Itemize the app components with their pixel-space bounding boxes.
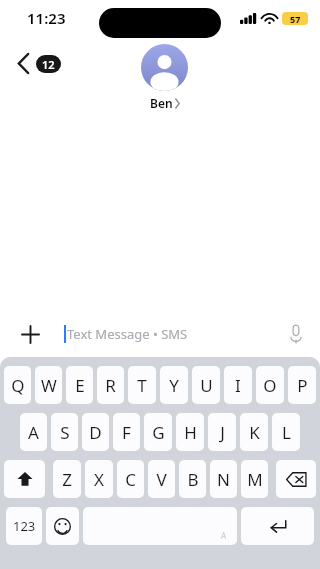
button[interactable]: Text Message • SMS — [53, 318, 280, 350]
button[interactable]: L — [272, 413, 300, 451]
staticText: A — [28, 421, 39, 444]
button[interactable]: O — [256, 366, 284, 404]
button[interactable]: I — [224, 366, 252, 404]
staticText: S — [60, 421, 70, 444]
staticText: U — [200, 374, 213, 397]
staticText: N — [217, 468, 230, 491]
button[interactable]: E — [66, 366, 93, 404]
staticText: X — [94, 468, 104, 491]
button[interactable]: U — [192, 366, 220, 404]
button[interactable]: A — [20, 413, 47, 451]
button[interactable]: Space — [83, 507, 237, 545]
staticText: Ben — [150, 95, 173, 111]
staticText: K — [249, 421, 260, 444]
button[interactable]: R — [97, 366, 124, 404]
button[interactable]: D — [82, 413, 109, 451]
button[interactable]: N — [210, 460, 237, 498]
staticText: E — [75, 374, 85, 397]
button[interactable]: Record audio message — [280, 318, 312, 350]
staticText: 11:23 — [27, 8, 66, 28]
staticText: B — [187, 468, 199, 491]
button[interactable]: M — [241, 460, 268, 498]
staticText: W — [41, 374, 57, 397]
button[interactable]: F — [113, 413, 140, 451]
button[interactable]: Q — [4, 366, 31, 404]
staticText: 123 — [13, 517, 36, 535]
button[interactable]: Z — [53, 460, 81, 498]
staticText: D — [89, 421, 102, 444]
staticText: G — [152, 421, 165, 444]
staticText: O — [263, 374, 277, 397]
staticText: A — [221, 530, 227, 541]
button[interactable]: C — [117, 460, 144, 498]
button[interactable]: S — [51, 413, 78, 451]
staticText: 57 — [290, 13, 301, 25]
button[interactable]: Y — [160, 366, 188, 404]
button[interactable]: Return — [241, 507, 314, 545]
staticText: T — [137, 374, 147, 397]
button[interactable]: Numbers and symbols — [6, 507, 42, 545]
staticText: H — [184, 421, 197, 444]
button[interactable]: Back, 12 unread — [14, 50, 65, 77]
staticText: Y — [169, 374, 179, 397]
button[interactable]: Delete — [276, 460, 316, 498]
button[interactable]: B — [179, 460, 206, 498]
staticText: P — [297, 374, 308, 397]
button[interactable]: K — [240, 413, 268, 451]
button[interactable]: V — [148, 460, 175, 498]
button[interactable]: J — [208, 413, 236, 451]
staticText: R — [105, 374, 116, 397]
staticText: M — [247, 468, 263, 491]
button[interactable]: G — [144, 413, 172, 451]
staticText: Q — [11, 374, 25, 397]
button[interactable]: Ben — [141, 44, 188, 111]
button[interactable]: X — [85, 460, 113, 498]
button[interactable]: T — [128, 366, 156, 404]
staticText: Z — [62, 468, 72, 491]
staticText: F — [122, 421, 131, 444]
staticText: I — [235, 374, 241, 397]
button[interactable]: P — [288, 366, 316, 404]
staticText: Text Message • SMS — [67, 325, 188, 343]
staticText: 12 — [42, 57, 55, 72]
button[interactable]: Shift — [4, 460, 45, 498]
button[interactable]: Add attachment — [12, 316, 48, 352]
button[interactable]: Emoji — [46, 507, 79, 545]
button[interactable]: W — [35, 366, 62, 404]
staticText: J — [220, 421, 225, 444]
staticText: L — [282, 421, 291, 444]
staticText: V — [156, 468, 167, 491]
button[interactable]: H — [176, 413, 204, 451]
staticText: C — [125, 468, 136, 491]
